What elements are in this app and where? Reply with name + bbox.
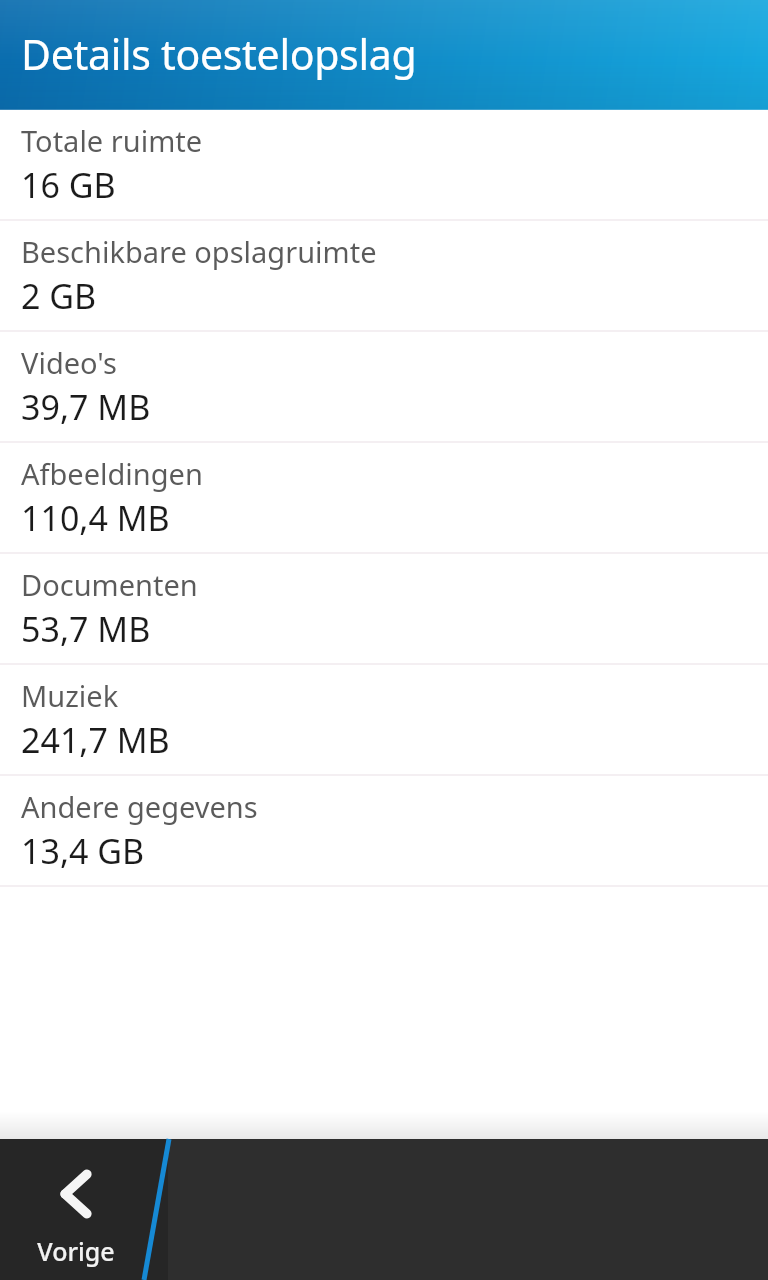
staticText: Details toestelopslag bbox=[21, 26, 417, 82]
staticText: Muziek bbox=[21, 676, 119, 715]
button[interactable]: Totale ruimte bbox=[0, 110, 768, 221]
staticText: 2 GB bbox=[21, 273, 97, 319]
staticText: 13,4 GB bbox=[21, 828, 145, 874]
staticText: Vorige bbox=[37, 1234, 115, 1268]
staticText: Andere gegevens bbox=[21, 787, 258, 826]
button[interactable]: Andere gegevens bbox=[0, 776, 768, 887]
button[interactable]: Video's bbox=[0, 332, 768, 443]
staticText: 110,4 MB bbox=[21, 495, 170, 541]
staticText: Documenten bbox=[21, 565, 198, 604]
button[interactable]: Afbeeldingen bbox=[0, 443, 768, 554]
staticText: 241,7 MB bbox=[21, 717, 170, 763]
staticText: 53,7 MB bbox=[21, 606, 151, 652]
staticText: Video's bbox=[21, 343, 117, 382]
button[interactable]: Beschikbare opslagruimte bbox=[0, 221, 768, 332]
button[interactable]: Muziek bbox=[0, 665, 768, 776]
staticText: 16 GB bbox=[21, 162, 116, 208]
staticText: Beschikbare opslagruimte bbox=[21, 232, 377, 271]
button[interactable]: Documenten bbox=[0, 554, 768, 665]
staticText: Totale ruimte bbox=[21, 121, 203, 160]
staticText: 39,7 MB bbox=[21, 384, 151, 430]
staticText: Afbeeldingen bbox=[21, 454, 203, 493]
button[interactable]: Vorige - terug bbox=[0, 1139, 152, 1280]
